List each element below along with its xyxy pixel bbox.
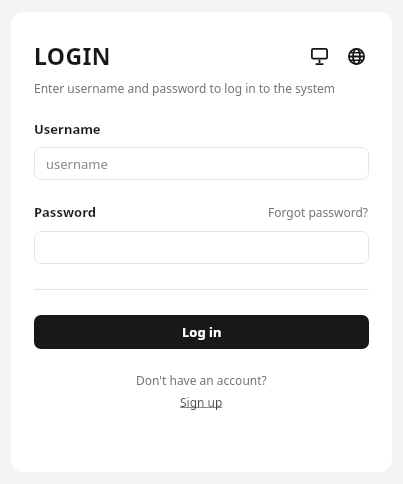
button[interactable]: username [34, 147, 369, 180]
button[interactable]: Sign up [180, 394, 223, 410]
staticText: Enter username and password to log in to… [34, 80, 336, 96]
button[interactable]: Display mode [306, 43, 332, 69]
staticText: LOGIN [34, 40, 111, 71]
staticText: Password [34, 203, 96, 221]
staticText: Don't have an account? [136, 372, 267, 388]
staticText: Username [34, 120, 101, 138]
button[interactable] [34, 231, 369, 264]
staticText: username [46, 155, 108, 173]
staticText: Forgot password? [268, 204, 369, 220]
button[interactable]: Language [343, 43, 369, 69]
staticText: Log in [182, 323, 222, 341]
staticText: Sign up [180, 394, 223, 410]
button[interactable]: Log in [34, 315, 369, 349]
button[interactable]: Forgot password? [268, 202, 369, 222]
